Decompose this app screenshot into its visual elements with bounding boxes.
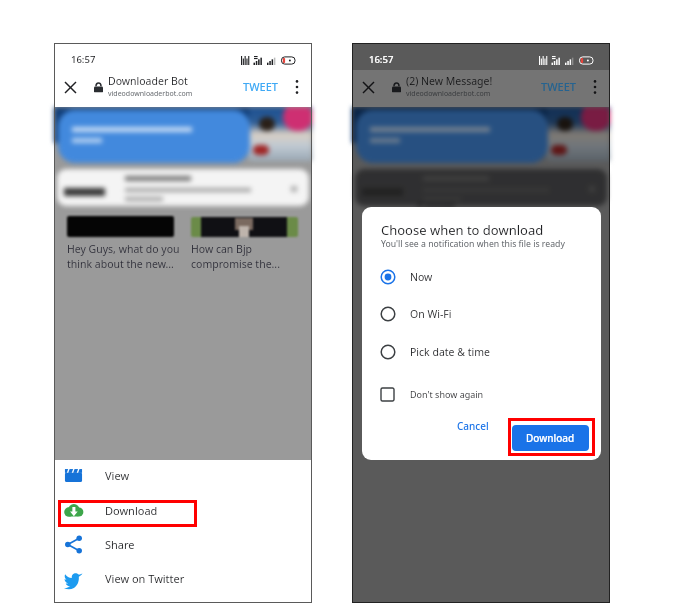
staticText: How can Bjp compromise the... [489,242,578,271]
button[interactable]: Download [512,425,589,451]
staticText: Now [410,270,433,284]
staticText: Download [526,431,575,445]
staticText: View [105,468,130,483]
button[interactable]: Don't show again [362,380,601,408]
button[interactable]: Pick date & time [362,338,601,366]
button[interactable]: More options [284,74,310,100]
staticText: Choose when to download [381,221,544,239]
staticText: On Wi-Fi [410,307,452,321]
staticText: TWEET [541,79,576,94]
staticText: Downloader Bot [108,74,188,88]
button[interactable]: Share [54,527,312,561]
button[interactable]: View [54,458,312,492]
staticText: Cancel [457,419,489,433]
staticText: Don't show again [410,388,484,400]
staticText: ₹20000 [417,199,455,214]
button[interactable]: Download [54,493,312,527]
button[interactable]: Now [362,263,601,291]
staticText: Hey Guys, what do you think about the ne… [67,242,180,271]
button[interactable]: More options [582,74,608,100]
staticText: videodownloaderbot.com [406,89,491,99]
staticText: (2) New Message! [406,74,493,88]
button[interactable]: Close [352,71,384,103]
staticText: You'll see a notification when this file… [381,238,565,250]
staticText: videodownloaderbot.com [108,89,193,99]
button[interactable]: On Wi-Fi [362,300,601,328]
staticText: How can Bjp compromise the... [191,242,280,271]
button[interactable]: Close [54,71,86,103]
button[interactable]: View on Twitter [54,561,312,595]
button[interactable]: Cancel [454,414,492,438]
button[interactable]: TWEET [237,79,284,94]
staticText: View on Twitter [105,571,185,586]
staticText: 16:57 [369,53,394,66]
staticText: 16:57 [71,53,96,66]
staticText: Hey Guys, what do you think about the ne… [365,242,478,271]
staticText: Share [105,537,135,552]
staticText: Download [105,503,158,518]
button[interactable]: TWEET [535,79,582,94]
staticText: Pick date & time [410,345,490,359]
staticText: TWEET [243,79,278,94]
